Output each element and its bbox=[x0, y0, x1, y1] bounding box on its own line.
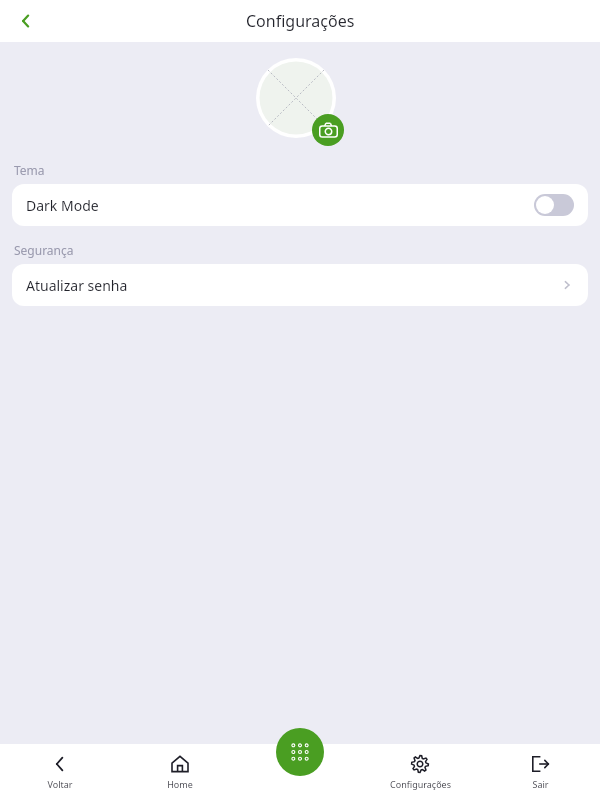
staticText: Configurações bbox=[390, 778, 451, 790]
staticText: Voltar bbox=[47, 778, 73, 790]
staticText: Home bbox=[167, 778, 193, 790]
button[interactable]: Voltar bbox=[0, 748, 120, 796]
staticText: Dark Mode bbox=[26, 196, 99, 215]
button[interactable]: Configurações bbox=[360, 748, 480, 796]
staticText: Atualizar senha bbox=[26, 276, 128, 295]
button[interactable]: Atualizar senha bbox=[12, 264, 588, 306]
button[interactable]: Alterar foto bbox=[312, 114, 344, 146]
button[interactable]: Dark Mode bbox=[12, 184, 588, 226]
button[interactable]: Home bbox=[120, 748, 240, 796]
staticText: Configurações bbox=[246, 10, 355, 32]
staticText: Segurança bbox=[14, 242, 74, 258]
staticText: Sair bbox=[532, 778, 549, 790]
staticText: Tema bbox=[14, 162, 45, 178]
button[interactable]: Menu bbox=[276, 728, 324, 776]
button[interactable]: Sair bbox=[480, 748, 600, 796]
button[interactable]: Voltar bbox=[8, 3, 44, 39]
